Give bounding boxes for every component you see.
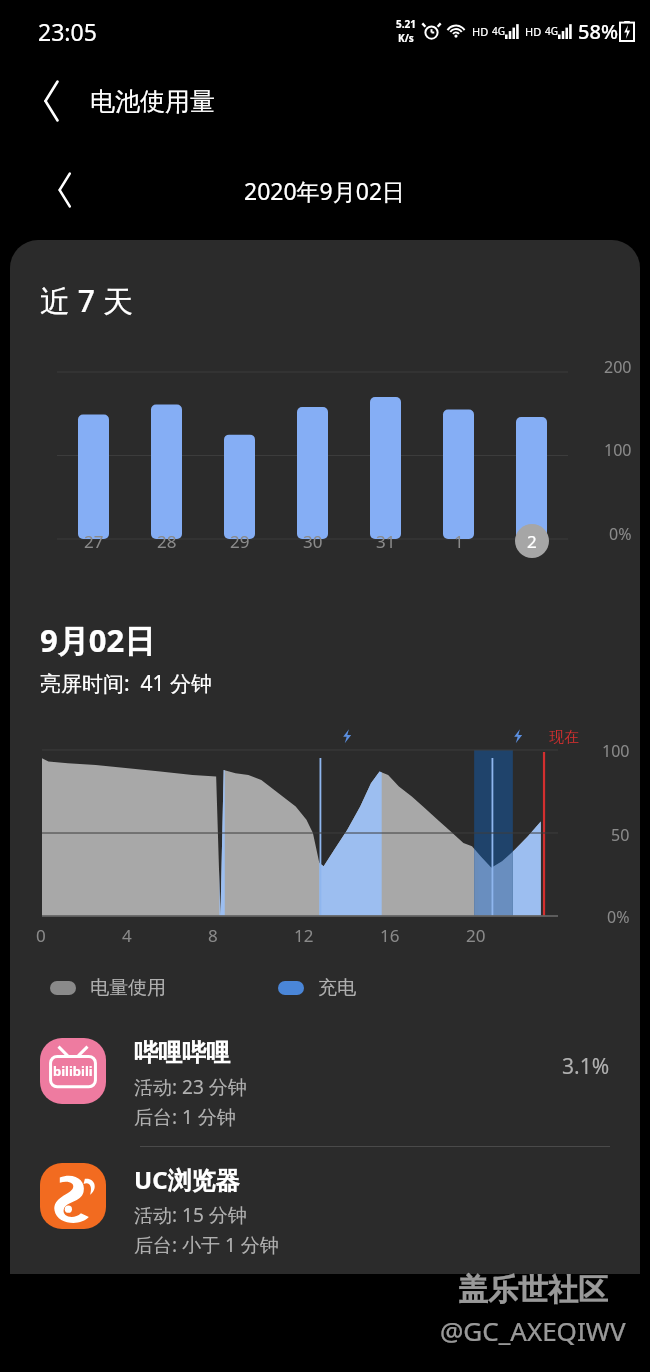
staticText: 充电: [318, 976, 356, 1000]
staticText: 活动: 23 分钟: [134, 1074, 247, 1100]
staticText: 58%: [578, 18, 618, 45]
staticText: 3.1%: [562, 1052, 610, 1081]
staticText: 4: [122, 924, 132, 947]
staticText: 16: [380, 924, 400, 947]
staticText: HD: [525, 24, 542, 39]
staticText: bilibili: [53, 1062, 93, 1080]
staticText: 盖乐世社区: [458, 1271, 608, 1309]
staticText: 23:05: [38, 16, 97, 47]
staticText: 4G: [545, 24, 558, 38]
staticText: 31: [376, 530, 396, 553]
staticText: 30: [303, 530, 323, 553]
staticText: 28: [157, 530, 177, 553]
staticText: 4G: [492, 24, 505, 38]
button[interactable]: 返回: [28, 76, 78, 126]
staticText: 100: [604, 439, 632, 461]
staticText: 0: [36, 924, 46, 947]
button[interactable]: 31: [369, 524, 403, 558]
staticText: 近 7 天: [40, 280, 133, 321]
staticText: 2020年9月02日: [244, 175, 406, 206]
staticText: 100: [602, 740, 630, 762]
staticText: 亮屏时间: 41 分钟: [40, 669, 213, 698]
button[interactable]: 前一天: [42, 166, 90, 214]
staticText: 20: [466, 924, 486, 947]
button[interactable]: 27: [77, 524, 111, 558]
staticText: 现在: [549, 728, 579, 747]
button[interactable]: UC浏览器: [10, 1147, 640, 1274]
staticText: K/s: [398, 31, 414, 45]
staticText: UC浏览器: [134, 1163, 240, 1196]
staticText: 活动: 15 分钟: [134, 1202, 247, 1228]
staticText: 50: [611, 824, 630, 846]
staticText: 0%: [607, 906, 630, 928]
button[interactable]: 2: [515, 524, 549, 558]
button[interactable]: bilibili: [10, 1022, 640, 1146]
staticText: 后台: 1 分钟: [134, 1104, 236, 1130]
staticText: 电量使用: [90, 976, 166, 1000]
staticText: 0%: [609, 523, 632, 545]
button[interactable]: 29: [223, 524, 257, 558]
staticText: 200: [604, 356, 632, 378]
staticText: 电池使用量: [90, 86, 215, 117]
staticText: 27: [84, 530, 104, 553]
staticText: 哔哩哔哩: [134, 1038, 230, 1068]
button[interactable]: 28: [150, 524, 184, 558]
staticText: @GC_AXEQIWV: [440, 1313, 626, 1348]
staticText: 后台: 小于 1 分钟: [134, 1232, 279, 1258]
button[interactable]: 1: [442, 524, 476, 558]
button[interactable]: 30: [296, 524, 330, 558]
staticText: 5.21: [396, 17, 416, 31]
staticText: 1: [454, 530, 464, 553]
staticText: HD: [472, 24, 489, 39]
staticText: 12: [294, 924, 314, 947]
staticText: 9月02日: [40, 619, 156, 661]
staticText: 29: [230, 530, 250, 553]
staticText: 2: [527, 530, 537, 553]
staticText: 8: [208, 924, 218, 947]
